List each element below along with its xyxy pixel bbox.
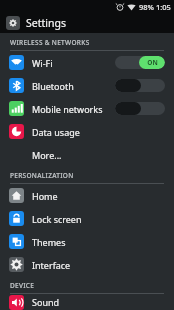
button[interactable]: Lock screen	[0, 207, 174, 230]
staticText: Home	[32, 190, 58, 202]
staticText: More...	[32, 149, 62, 161]
staticText: Data usage	[32, 126, 80, 138]
staticText: PERSONALIZATION	[10, 171, 74, 180]
staticText: Themes	[32, 236, 66, 248]
staticText: 98%	[139, 2, 154, 12]
button[interactable]: Toggle off	[115, 79, 165, 92]
staticText: DEVICE	[10, 281, 35, 290]
button[interactable]: Data usage	[0, 120, 174, 143]
button[interactable]: Toggle on	[115, 56, 165, 69]
staticText: ON	[147, 58, 158, 67]
staticText: Settings	[26, 16, 66, 30]
button[interactable]: More...	[0, 143, 174, 166]
staticText: Interface	[32, 259, 71, 271]
button[interactable]: Themes	[0, 230, 174, 253]
staticText: 1:05	[156, 2, 171, 12]
button[interactable]: Home	[0, 184, 174, 207]
other: Settings app icon	[6, 16, 20, 30]
button[interactable]: Wi-Fi	[0, 51, 174, 74]
staticText: Wi-Fi	[32, 57, 53, 69]
button[interactable]: Toggle off	[115, 102, 165, 115]
staticText: WIRELESS & NETWORKS	[10, 38, 90, 47]
button[interactable]: Bluetooth	[0, 74, 174, 97]
button[interactable]: Interface	[0, 253, 174, 276]
staticText: Sound	[32, 296, 60, 308]
button[interactable]: Mobile networks	[0, 97, 174, 120]
staticText: Bluetooth	[32, 80, 74, 92]
button[interactable]: Sound	[0, 294, 174, 310]
staticText: Mobile networks	[32, 103, 103, 115]
staticText: Lock screen	[32, 213, 82, 225]
